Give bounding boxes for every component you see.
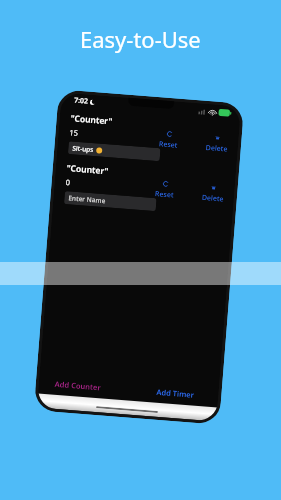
staticText: Easy-to-Use	[80, 24, 201, 54]
button[interactable]: Sit-ups	[68, 141, 161, 161]
staticText: 0	[65, 177, 71, 187]
staticText: Delete	[205, 143, 228, 155]
button[interactable]: Delete	[202, 132, 232, 156]
staticText: "Counter"	[66, 162, 109, 177]
button[interactable]: Add Timer	[154, 385, 197, 402]
button[interactable]: Reset	[151, 178, 178, 202]
staticText: Delete	[201, 193, 224, 204]
staticText: Sit-ups	[72, 143, 95, 154]
staticText: 7:02	[74, 95, 88, 106]
staticText: Enter Name	[68, 193, 107, 205]
button[interactable]: Enter Name	[64, 191, 157, 211]
staticText: Add Timer	[156, 387, 195, 400]
staticText: Add Counter	[54, 379, 102, 392]
staticText: 15	[69, 127, 79, 138]
button[interactable]: Add Counter	[52, 377, 104, 395]
button[interactable]: Reset	[155, 128, 182, 152]
staticText: Reset	[155, 189, 174, 201]
button[interactable]: Delete	[198, 182, 228, 206]
staticText: "Counter"	[70, 112, 113, 127]
staticText: Reset	[158, 139, 178, 151]
